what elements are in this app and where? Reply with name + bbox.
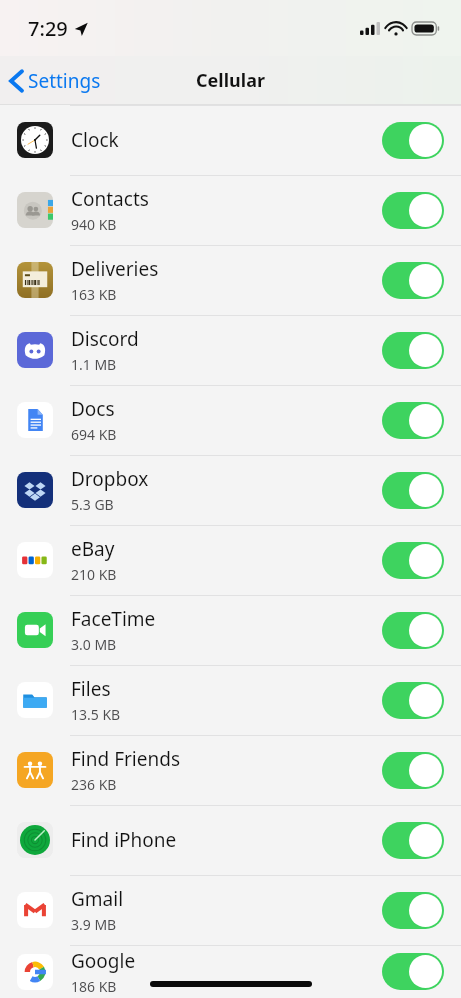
staticText: 3.9 MB (71, 915, 117, 934)
button[interactable]: eBay (0, 525, 461, 595)
staticText: Files (71, 676, 111, 702)
staticText: 163 KB (71, 285, 117, 304)
staticText: Clock (71, 127, 119, 153)
staticText: Deliveries (71, 256, 159, 282)
staticText: Dropbox (71, 466, 149, 492)
button[interactable]: Settings (0, 62, 111, 100)
staticText: FaceTime (71, 606, 156, 632)
button[interactable]: Google (0, 945, 461, 998)
staticText: 186 KB (71, 977, 117, 996)
button[interactable]: Toggle cellular data (382, 262, 444, 299)
button[interactable]: Toggle cellular data (382, 402, 444, 439)
button[interactable]: Contacts (0, 175, 461, 245)
staticText: 236 KB (71, 775, 117, 794)
staticText: 694 KB (71, 425, 117, 444)
button[interactable]: Files (0, 665, 461, 735)
button[interactable]: Toggle cellular data (382, 892, 444, 929)
button[interactable]: Find Friends (0, 735, 461, 805)
button[interactable]: Toggle cellular data (382, 542, 444, 579)
button[interactable]: Find iPhone (0, 805, 461, 875)
button[interactable]: Deliveries (0, 245, 461, 315)
button[interactable]: Clock (0, 105, 461, 175)
staticText: Cellular (196, 68, 265, 93)
button[interactable]: Toggle cellular data (382, 612, 444, 649)
staticText: 1.1 MB (71, 355, 117, 374)
button[interactable]: Toggle cellular data (382, 472, 444, 509)
staticText: Find iPhone (71, 827, 177, 853)
staticText: 3.0 MB (71, 635, 117, 654)
button[interactable]: Toggle cellular data (382, 332, 444, 369)
button[interactable]: Toggle cellular data (382, 752, 444, 789)
button[interactable]: Toggle cellular data (382, 953, 444, 990)
button[interactable]: Toggle cellular data (382, 122, 444, 159)
staticText: 5.3 GB (71, 495, 114, 514)
staticText: 7:29 (28, 15, 68, 42)
staticText: Find Friends (71, 746, 180, 772)
button[interactable]: Docs (0, 385, 461, 455)
button[interactable]: FaceTime (0, 595, 461, 665)
staticText: 13.5 KB (71, 705, 121, 724)
button[interactable]: Toggle cellular data (382, 192, 444, 229)
staticText: Gmail (71, 886, 124, 912)
button[interactable]: Discord (0, 315, 461, 385)
staticText: Settings (28, 68, 101, 94)
staticText: 940 KB (71, 215, 117, 234)
button[interactable]: Dropbox (0, 455, 461, 525)
staticText: 210 KB (71, 565, 117, 584)
staticText: Discord (71, 326, 139, 352)
button[interactable]: Toggle cellular data (382, 822, 444, 859)
button[interactable]: Gmail (0, 875, 461, 945)
staticText: Google (71, 948, 136, 974)
staticText: Docs (71, 396, 115, 422)
staticText: Contacts (71, 186, 149, 212)
button[interactable]: Toggle cellular data (382, 682, 444, 719)
staticText: eBay (71, 536, 115, 562)
